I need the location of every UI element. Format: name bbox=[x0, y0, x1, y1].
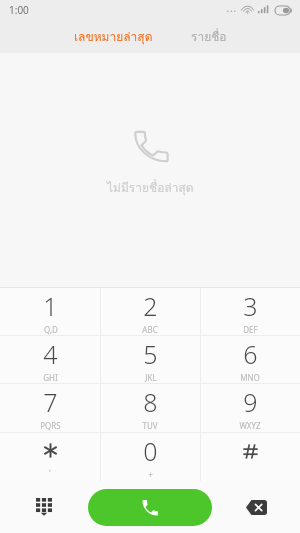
staticText: 6 bbox=[243, 337, 258, 371]
button[interactable]: 0 bbox=[100, 433, 200, 481]
staticText: MNO bbox=[240, 372, 260, 383]
button[interactable]: Call bbox=[88, 489, 212, 526]
button[interactable]: เลขหมายล่าสุด bbox=[64, 23, 163, 50]
staticText: 3 bbox=[243, 289, 258, 323]
staticText: + bbox=[148, 469, 153, 480]
staticText: PQRS bbox=[40, 420, 61, 431]
button[interactable]: Hide dialpad bbox=[0, 481, 88, 533]
button[interactable]: 8 bbox=[100, 384, 200, 432]
staticText: DEF bbox=[243, 324, 258, 335]
staticText: 7 bbox=[43, 385, 58, 419]
staticText: 1:00 bbox=[9, 3, 29, 17]
button[interactable]: 7 bbox=[0, 384, 100, 432]
button[interactable]: 6 bbox=[200, 336, 300, 383]
staticText: ABC bbox=[142, 324, 158, 335]
button[interactable]: 3 bbox=[200, 288, 300, 335]
button[interactable] bbox=[200, 433, 300, 481]
button[interactable]: 1 bbox=[0, 288, 100, 335]
button[interactable]: 2 bbox=[100, 288, 200, 335]
staticText: WXYZ bbox=[239, 420, 261, 431]
staticText: 2 bbox=[143, 289, 158, 323]
staticText: Q,D bbox=[44, 324, 58, 335]
staticText: 1 bbox=[43, 289, 58, 323]
staticText: 0 bbox=[143, 434, 158, 468]
staticText: 9 bbox=[243, 385, 258, 419]
staticText: 4 bbox=[43, 337, 58, 371]
staticText: GHI bbox=[43, 372, 58, 383]
staticText: TUV bbox=[142, 420, 158, 431]
staticText: 8 bbox=[143, 385, 158, 419]
button[interactable]: Delete bbox=[212, 481, 300, 533]
button[interactable]: 5 bbox=[100, 336, 200, 383]
button[interactable]: , bbox=[0, 433, 100, 481]
staticText: ไม่มีรายชื่อล่าสุด bbox=[107, 178, 194, 197]
staticText: , bbox=[49, 462, 52, 473]
button[interactable]: 4 bbox=[0, 336, 100, 383]
staticText: 5 bbox=[143, 337, 158, 371]
button[interactable]: รายชื่อ bbox=[181, 23, 237, 50]
button[interactable]: 9 bbox=[200, 384, 300, 432]
staticText: รายชื่อ bbox=[191, 27, 227, 46]
staticText: JKL bbox=[145, 372, 157, 383]
staticText: เลขหมายล่าสุด bbox=[74, 27, 153, 46]
